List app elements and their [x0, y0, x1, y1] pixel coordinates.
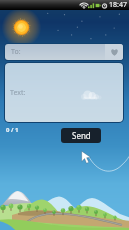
button[interactable]: Choose contact [105, 44, 123, 60]
other: Pointer [81, 151, 93, 164]
staticText: Text: [10, 88, 26, 98]
button[interactable]: Send [61, 128, 101, 143]
staticText: 0 / 1 [6, 126, 19, 134]
button[interactable]: Text: [5, 63, 123, 122]
staticText: To: [11, 47, 105, 57]
staticText: Send [72, 130, 91, 141]
button[interactable]: To: [5, 44, 123, 60]
staticText: 18:47 [109, 0, 127, 10]
